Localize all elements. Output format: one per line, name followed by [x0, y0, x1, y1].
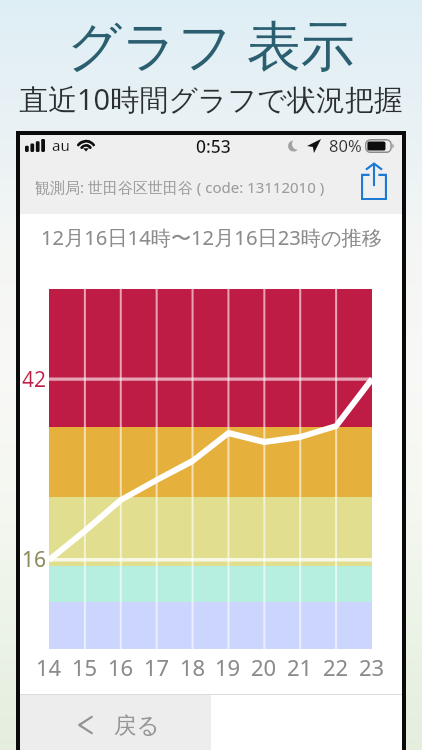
button[interactable]: Share	[352, 158, 396, 208]
staticText: 15	[72, 652, 98, 682]
staticText: グラフ 表示	[67, 7, 355, 75]
staticText: 18	[180, 652, 206, 682]
staticText: 21	[287, 652, 313, 682]
staticText: 23	[359, 652, 385, 682]
staticText: 14	[36, 652, 62, 682]
staticText: 観測局: 世田谷区世田谷 ( code: 13112010 )	[35, 177, 325, 197]
button[interactable]: 戻る	[20, 695, 211, 750]
staticText: 戻る	[114, 711, 160, 739]
staticText: 80%	[329, 134, 362, 156]
staticText: 20	[251, 652, 277, 682]
staticText: au	[52, 135, 70, 155]
staticText: 0:53	[196, 134, 231, 158]
staticText: 17	[144, 652, 170, 682]
staticText: 16	[22, 545, 47, 574]
staticText: 42	[22, 365, 47, 394]
staticText: 22	[323, 652, 349, 682]
staticText: 直近10時間グラフで状況把握	[19, 79, 403, 119]
staticText: 19	[215, 652, 241, 682]
staticText: 16	[108, 652, 134, 682]
staticText: 12月16日14時〜12月16日23時の推移	[41, 223, 382, 251]
